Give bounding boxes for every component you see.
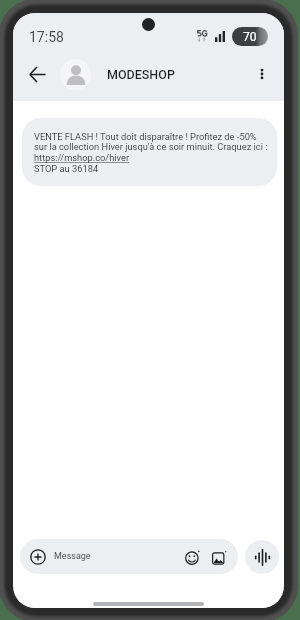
staticText: Message	[54, 551, 91, 562]
button[interactable]: Emoji	[183, 547, 202, 566]
button[interactable]: Contact avatar	[60, 59, 91, 90]
staticText: 17:58	[29, 29, 64, 45]
staticText: 70	[243, 30, 257, 44]
staticText: MODESHOP	[107, 67, 175, 82]
button[interactable]: Voice message	[245, 540, 279, 574]
button[interactable]: Attach image	[210, 547, 229, 566]
button[interactable]: VENTE FLASH ! Tout doit disparaître ! Pr…	[22, 118, 277, 186]
button[interactable]: Message	[20, 539, 238, 574]
button[interactable]: More options	[245, 57, 279, 91]
button[interactable]: Back	[20, 57, 54, 91]
staticText: VENTE FLASH ! Tout doit disparaître ! Pr…	[34, 131, 269, 175]
